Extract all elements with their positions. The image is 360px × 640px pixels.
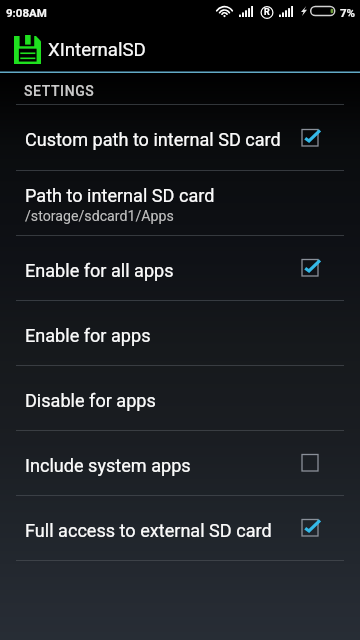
button[interactable]: Full access to external SD card xyxy=(0,496,360,560)
staticText: Enable for all apps xyxy=(25,260,174,281)
button[interactable]: Include system apps xyxy=(0,431,360,495)
button[interactable]: Checked xyxy=(300,126,324,150)
staticText: Path to internal SD card xyxy=(25,185,215,206)
button[interactable]: Enable for all apps xyxy=(0,236,360,300)
staticText: Full access to external SD card xyxy=(25,520,272,541)
staticText: Include system apps xyxy=(25,455,191,476)
staticText: 9:08AM xyxy=(6,6,47,19)
button[interactable]: Enable for apps xyxy=(0,301,360,365)
staticText: Enable for apps xyxy=(25,325,151,346)
button[interactable]: Checked xyxy=(300,256,324,280)
button[interactable]: Path to internal SD card xyxy=(0,171,360,235)
button[interactable]: Unchecked xyxy=(300,451,324,475)
staticText: /storage/sdcard1/Apps xyxy=(25,208,174,225)
staticText: Disable for apps xyxy=(25,390,156,411)
button[interactable]: Custom path to internal SD card xyxy=(0,105,360,170)
button[interactable]: Checked xyxy=(300,516,324,540)
staticText: 7% xyxy=(340,6,356,19)
staticText: SETTINGS xyxy=(24,83,95,99)
staticText: Custom path to internal SD card xyxy=(25,129,281,150)
staticText: XInternalSD xyxy=(48,39,146,61)
button[interactable]: Disable for apps xyxy=(0,366,360,430)
staticText: R xyxy=(264,7,270,18)
